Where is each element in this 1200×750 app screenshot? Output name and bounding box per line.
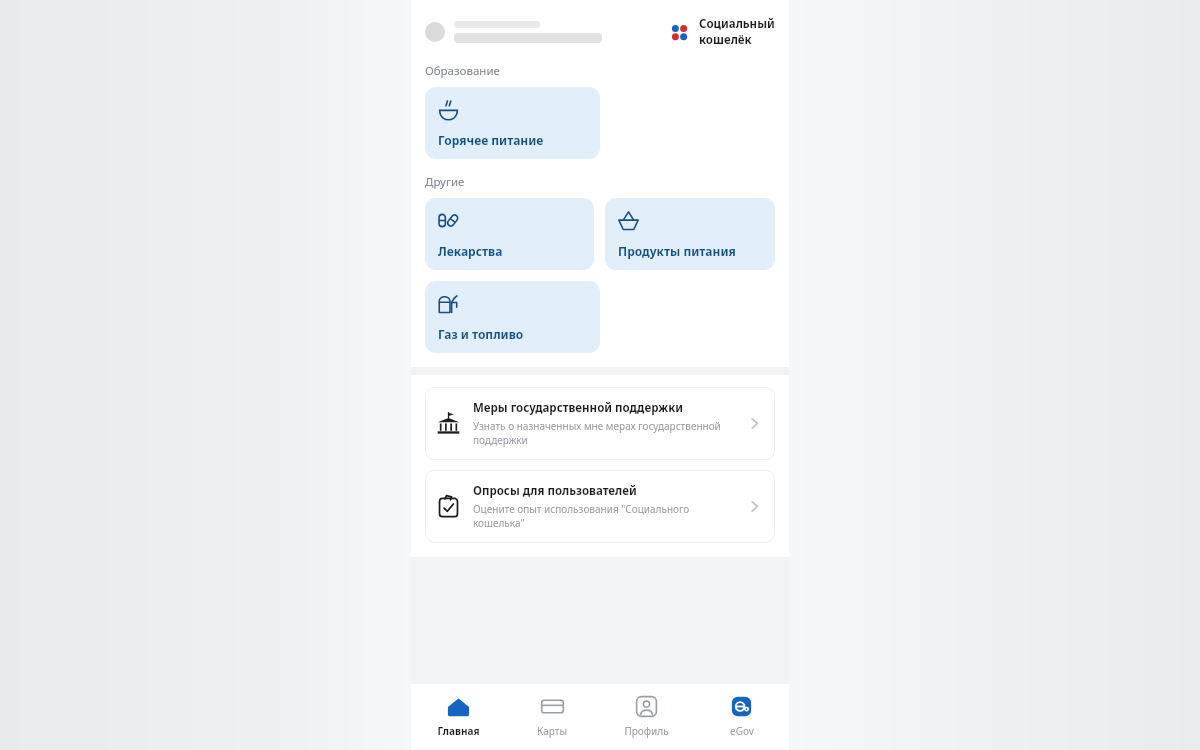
button[interactable]: Профиль — [599, 684, 694, 750]
button[interactable]: eGov — [694, 684, 789, 750]
staticText: Карты — [537, 724, 567, 738]
staticText: Другие — [425, 174, 465, 190]
staticText: Продукты питания — [618, 243, 736, 259]
other: Социальный кошелёк логотип — [667, 20, 692, 45]
staticText: Главная — [437, 724, 480, 738]
button[interactable]: Лекарства — [425, 198, 594, 270]
button[interactable]: Меры государственной поддержки — [425, 387, 775, 460]
button[interactable]: Горячее питание — [425, 87, 600, 159]
button[interactable] — [425, 21, 667, 43]
staticText: Профиль — [624, 724, 669, 738]
staticText: Меры государственной поддержки — [473, 400, 683, 416]
staticText: Узнать о назначенных мне мерах государст… — [473, 419, 738, 447]
staticText: eGov — [730, 724, 754, 738]
staticText: Оцените опыт использования "Социального … — [473, 502, 738, 530]
button[interactable]: Социальный кошелёк логотип — [667, 16, 775, 48]
staticText: Горячее питание — [438, 132, 544, 148]
button[interactable]: Опросы для пользователей — [425, 470, 775, 543]
staticText: Газ и топливо — [438, 326, 524, 342]
staticText: Лекарства — [438, 243, 503, 259]
button[interactable]: Газ и топливо — [425, 281, 600, 353]
button[interactable]: Карты — [505, 684, 599, 750]
button[interactable]: Продукты питания — [605, 198, 775, 270]
staticText: кошелёк — [699, 32, 752, 48]
button[interactable]: Главная — [411, 684, 505, 750]
staticText: Образование — [425, 63, 500, 79]
staticText: Опросы для пользователей — [473, 483, 637, 499]
staticText: Социальный — [699, 16, 775, 32]
